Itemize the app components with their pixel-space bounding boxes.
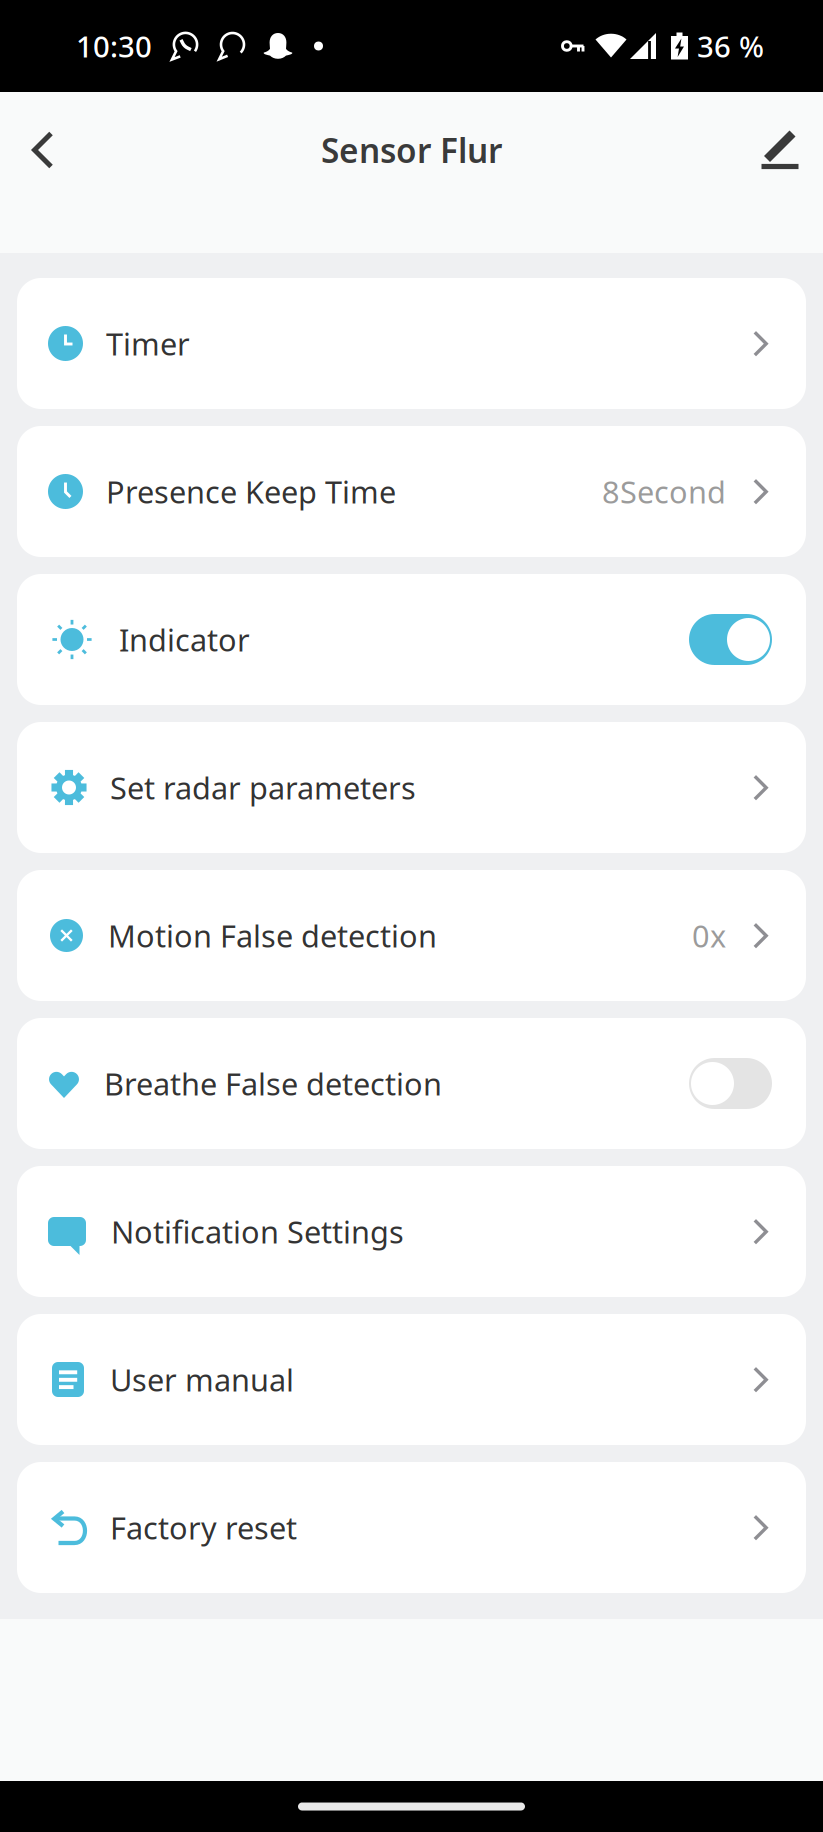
staticText: 10:30 — [76, 26, 152, 65]
staticText: Set radar parameters — [110, 767, 416, 808]
button[interactable]: Motion False detection — [17, 870, 806, 1001]
staticText: Notification Settings — [111, 1211, 404, 1252]
staticText: Motion False detection — [108, 915, 437, 956]
button[interactable]: Factory reset — [17, 1462, 806, 1593]
button[interactable]: Notification Settings — [17, 1166, 806, 1297]
button[interactable]: Back — [15, 121, 71, 179]
button[interactable]: Indicator — [17, 574, 806, 705]
staticText: Indicator — [119, 619, 250, 660]
button[interactable]: Set radar parameters — [17, 722, 806, 853]
staticText: 8Second — [602, 471, 726, 512]
staticText: Timer — [106, 323, 190, 364]
staticText: 0x — [692, 915, 726, 956]
staticText: Sensor Flur — [321, 128, 502, 172]
button[interactable]: Presence Keep Time — [17, 426, 806, 557]
staticText: Factory reset — [110, 1507, 297, 1548]
button[interactable]: Edit — [752, 121, 808, 179]
staticText: 36 % — [697, 26, 764, 65]
staticText: User manual — [110, 1359, 294, 1400]
staticText: Breathe False detection — [104, 1063, 442, 1104]
staticText: Presence Keep Time — [106, 471, 396, 512]
button[interactable]: Timer — [17, 278, 806, 409]
button[interactable]: Breathe False detection — [17, 1018, 806, 1149]
button[interactable]: User manual — [17, 1314, 806, 1445]
